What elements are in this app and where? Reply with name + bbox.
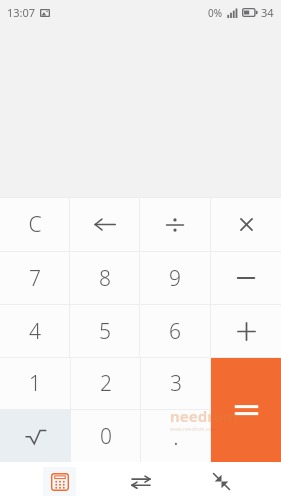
staticText: 4 — [29, 317, 41, 346]
button[interactable]: Calculator — [43, 467, 76, 496]
button[interactable]: C — [0, 198, 69, 251]
staticText: 9 — [169, 264, 181, 293]
button[interactable]: Backspace — [70, 198, 139, 251]
staticText: 2 — [100, 369, 112, 398]
button[interactable]: . — [141, 410, 210, 462]
staticText: C — [28, 210, 42, 239]
staticText: 7 — [29, 264, 41, 293]
button[interactable]: 1 — [0, 358, 70, 409]
button[interactable]: 3 — [141, 358, 210, 409]
button[interactable]: 4 — [0, 305, 69, 357]
button[interactable]: Minus — [211, 252, 281, 304]
button[interactable]: 0 — [71, 410, 140, 462]
staticText: 34 — [261, 5, 274, 20]
staticText: 3 — [170, 369, 182, 398]
staticText: 6 — [169, 317, 181, 346]
button[interactable]: Square root — [0, 410, 70, 462]
button[interactable]: 7 — [0, 252, 69, 304]
staticText: needrom — [170, 406, 238, 426]
button[interactable]: Plus — [211, 305, 281, 357]
staticText: www.needrom.com — [170, 426, 216, 433]
button[interactable]: 2 — [71, 358, 140, 409]
button[interactable]: 8 — [70, 252, 139, 304]
staticText: 5 — [99, 317, 111, 346]
button[interactable]: Equals — [211, 358, 281, 462]
button[interactable]: 6 — [140, 305, 210, 357]
staticText: 0% — [208, 6, 223, 20]
staticText: 0 — [100, 422, 112, 451]
button[interactable]: Multiply — [211, 198, 281, 251]
button[interactable]: 5 — [70, 305, 139, 357]
button[interactable]: Unit converter — [124, 467, 157, 496]
button[interactable]: Divide — [140, 198, 210, 251]
staticText: 13:07 — [7, 5, 36, 20]
button[interactable]: Collapse — [205, 467, 238, 496]
button[interactable]: 9 — [140, 252, 210, 304]
staticText: . — [173, 421, 179, 451]
staticText: 8 — [99, 264, 111, 293]
staticText: 1 — [29, 369, 41, 398]
